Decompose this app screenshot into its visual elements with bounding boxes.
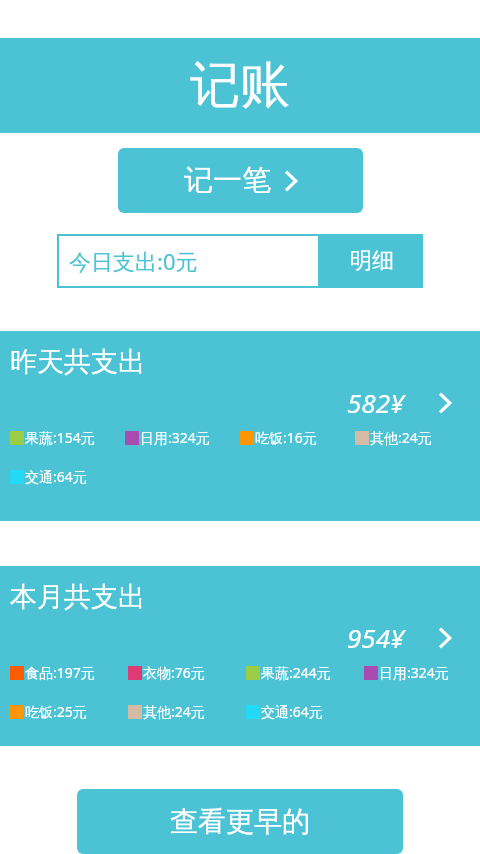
staticText: 果蔬:154元 — [25, 428, 95, 447]
staticText: 今日支出:0元 — [69, 246, 198, 276]
staticText: 衣物:76元 — [143, 663, 205, 682]
staticText: 交通:64元 — [25, 467, 87, 486]
staticText: 吃饭:25元 — [25, 702, 87, 721]
staticText: 582¥ — [347, 385, 405, 420]
staticText: 食品:197元 — [25, 663, 95, 682]
button[interactable]: 昨天共支出 — [0, 331, 480, 521]
staticText: 日用:324元 — [379, 663, 449, 682]
button[interactable]: 查看更早的 — [77, 789, 403, 854]
staticText: 吃饭:16元 — [255, 428, 317, 447]
staticText: 记一笔 — [184, 162, 271, 199]
button[interactable]: 记一笔 — [118, 148, 363, 213]
staticText: 明细 — [350, 247, 394, 275]
staticText: 果蔬:244元 — [261, 663, 331, 682]
button[interactable]: 明细 — [320, 234, 423, 288]
staticText: 交通:64元 — [261, 702, 323, 721]
button[interactable]: 本月共支出 — [0, 566, 480, 746]
staticText: 954¥ — [347, 620, 405, 655]
staticText: 记账 — [190, 54, 290, 117]
button[interactable]: 今日支出:0元 — [57, 234, 320, 288]
staticText: 其他:24元 — [143, 702, 205, 721]
staticText: 本月共支出 — [10, 580, 145, 614]
staticText: 昨天共支出 — [10, 345, 145, 379]
staticText: 查看更早的 — [170, 804, 310, 839]
staticText: 日用:324元 — [140, 428, 210, 447]
staticText: 其他:24元 — [370, 428, 432, 447]
